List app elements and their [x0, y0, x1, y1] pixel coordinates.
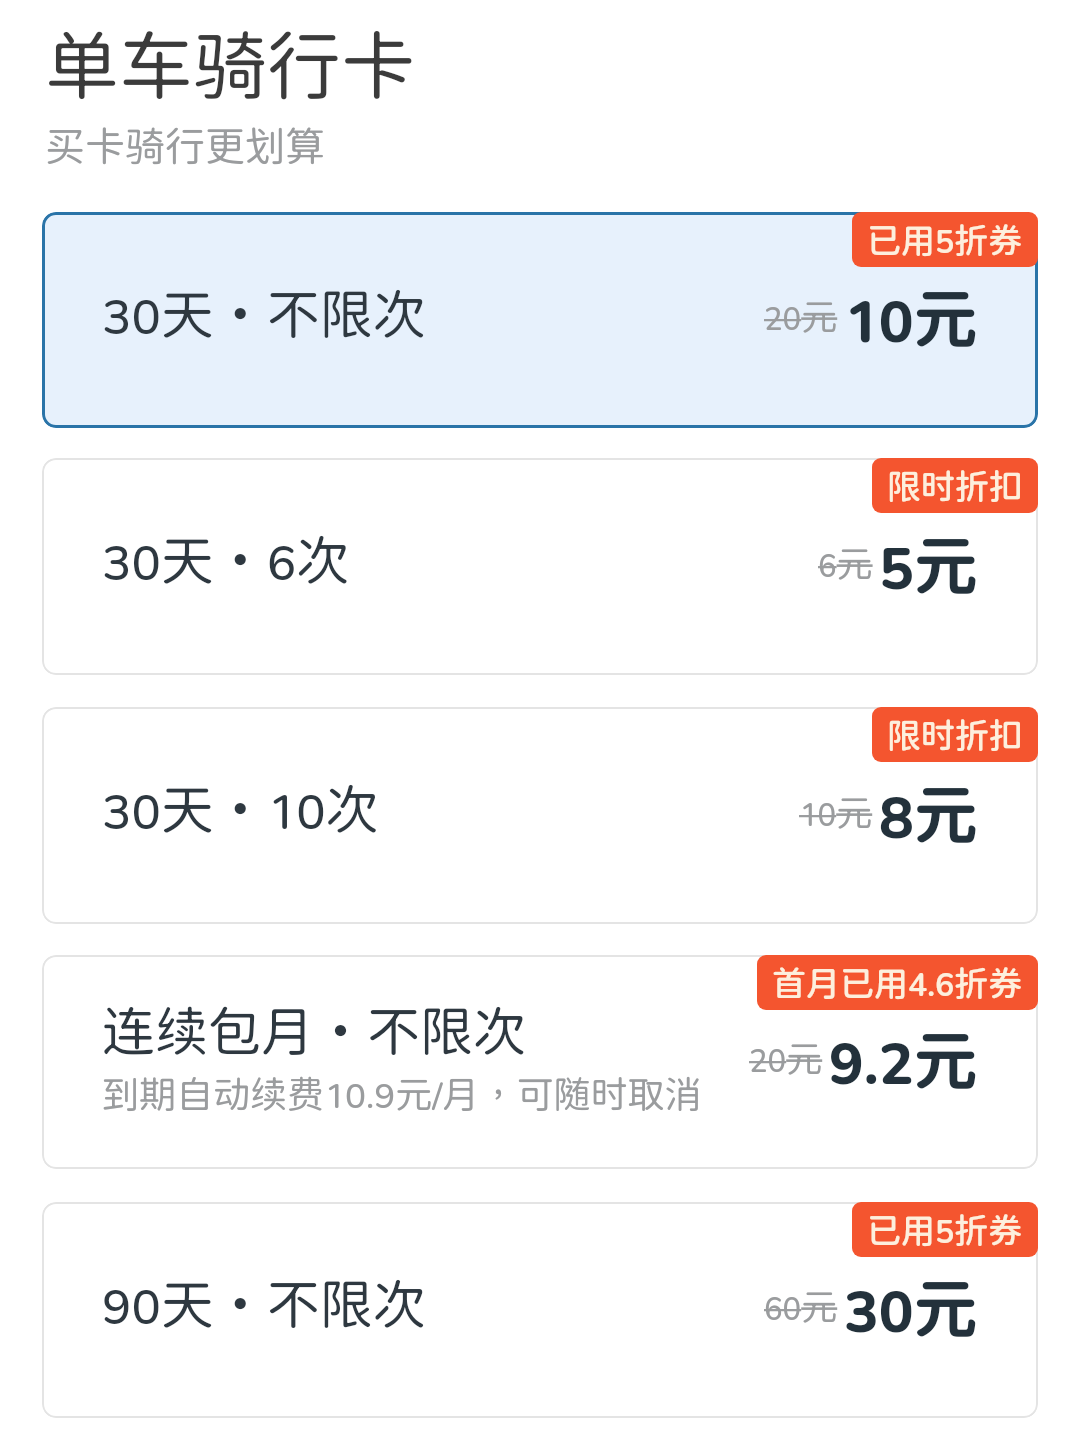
staticText: 5元 — [879, 527, 978, 603]
button[interactable]: 限时折扣 — [887, 707, 1023, 762]
staticText: 到期自动续费10.9元/月，可随时取消 — [102, 1072, 702, 1116]
staticText: 30天・6次 — [102, 529, 350, 592]
button[interactable]: 已用5折券 — [867, 212, 1023, 267]
button[interactable]: 30天・不限次 — [42, 212, 1038, 428]
button[interactable]: 连续包月・不限次 — [42, 955, 1038, 1169]
staticText: 首月已用4.6折券 — [772, 963, 1023, 1003]
staticText: 连续包月・不限次 — [102, 1000, 526, 1063]
staticText: 10元 — [844, 280, 978, 356]
staticText: 已用5折券 — [867, 1210, 1023, 1250]
button[interactable]: 已用5折券 — [867, 1202, 1023, 1257]
staticText: 30天・不限次 — [102, 283, 426, 346]
staticText: 30元 — [844, 1270, 978, 1346]
button[interactable]: 首月已用4.6折券 — [772, 955, 1023, 1010]
staticText: 买卡骑行更划算 — [45, 122, 325, 169]
staticText: 20元 — [749, 1037, 823, 1079]
staticText: 6元 — [818, 542, 873, 584]
staticText: 限时折扣 — [887, 466, 1023, 506]
button[interactable]: 限时折扣 — [887, 458, 1023, 513]
staticText: 30天・10次 — [102, 778, 379, 841]
staticText: 20元 — [764, 295, 838, 337]
staticText: 限时折扣 — [887, 715, 1023, 755]
button[interactable]: 90天・不限次 — [42, 1202, 1038, 1418]
staticText: 10元 — [799, 791, 873, 833]
staticText: 60元 — [764, 1285, 838, 1327]
button[interactable]: 30天・10次 — [42, 707, 1038, 924]
staticText: 90天・不限次 — [102, 1273, 426, 1336]
staticText: 单车骑行卡 — [45, 21, 415, 108]
staticText: 已用5折券 — [867, 220, 1023, 260]
staticText: 8元 — [879, 776, 978, 852]
staticText: 9.2元 — [829, 1022, 978, 1098]
button[interactable]: 30天・6次 — [42, 458, 1038, 675]
